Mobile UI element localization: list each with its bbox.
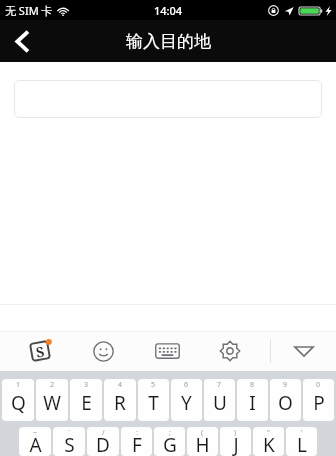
button[interactable]: 9 [270,379,301,421]
staticText: ) [234,428,237,438]
button[interactable]: Settings [207,331,253,371]
button[interactable]: 6 [171,379,202,421]
staticText: S [64,432,75,456]
button[interactable]: Sogou input [17,331,63,371]
staticText: ; [169,428,171,438]
button[interactable]: " [253,427,284,456]
button[interactable]: : [121,427,152,456]
staticText: T [148,390,159,416]
staticText: W [43,390,61,416]
staticText: / [102,428,105,438]
button[interactable]: 2 [36,379,68,421]
staticText: K [263,432,275,456]
staticText: ` [68,428,70,438]
staticText: G [163,432,177,456]
button[interactable]: ) [220,427,251,456]
staticText: Y [181,390,192,416]
staticText: 2 [50,380,55,390]
button[interactable]: ` [53,427,85,456]
staticText: " [267,428,270,438]
button[interactable]: ( [187,427,218,456]
button[interactable]: ; [154,427,185,456]
staticText: ( [201,428,204,438]
staticText: ' [301,428,303,438]
staticText: A [29,432,42,456]
button[interactable]: Back [0,20,44,62]
staticText: : [136,428,138,438]
staticText: 6 [184,380,189,390]
button[interactable]: 0 [303,379,334,421]
staticText: 0 [316,380,321,390]
button[interactable]: / [87,427,119,456]
staticText: R [114,390,126,416]
staticText: 5 [151,380,156,390]
button[interactable]: Hide keyboard [271,331,336,371]
button[interactable]: 8 [237,379,268,421]
staticText: F [132,432,142,456]
staticText: 7 [217,380,222,390]
staticText: J [233,432,239,456]
staticText: 1 [16,380,21,390]
staticText: 8 [250,380,255,390]
staticText: D [96,432,110,456]
button[interactable]: Keyboard layout [144,331,190,371]
staticText: 9 [283,380,288,390]
button[interactable]: 1 [2,379,34,421]
button[interactable]: Destination input [14,80,322,118]
staticText: 输入目的地 [126,31,211,52]
staticText: H [195,432,210,456]
staticText: U [213,390,227,416]
staticText: S [34,341,47,362]
button[interactable]: ~ [19,427,51,456]
staticText: I [249,390,256,416]
button[interactable]: Emoji [80,331,126,371]
staticText: L [297,432,307,456]
staticText: P [313,390,325,416]
button[interactable]: 4 [104,379,136,421]
staticText: 14:04 [154,3,183,18]
button[interactable]: 3 [70,379,102,421]
staticText: ~ [33,428,38,438]
staticText: O [278,390,293,416]
staticText: Q [11,390,26,416]
button[interactable]: ' [286,427,317,456]
staticText: 3 [84,380,89,390]
button[interactable]: 7 [204,379,235,421]
staticText: E [81,390,92,416]
staticText: 无 SIM 卡 [5,3,53,18]
staticText: 4 [118,380,123,390]
button[interactable]: 5 [138,379,169,421]
